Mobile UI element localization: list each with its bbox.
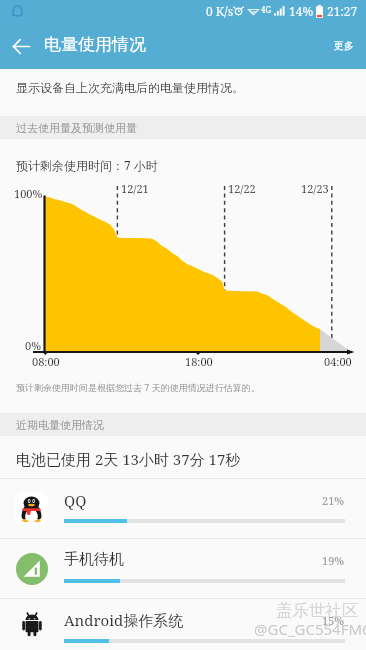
- staticText: @GC_GC554FM6: [254, 619, 366, 639]
- staticText: 04:00: [324, 354, 352, 369]
- staticText: 12/23: [301, 181, 329, 196]
- staticText: QQ: [64, 490, 87, 510]
- staticText: 0%: [25, 338, 42, 353]
- staticText: 12/21: [121, 181, 149, 196]
- staticText: 4G: [261, 4, 272, 15]
- staticText: 19%: [322, 553, 345, 568]
- button[interactable]: 更多: [320, 27, 366, 64]
- staticText: 手机待机: [64, 550, 124, 569]
- staticText: 近期电量使用情况: [16, 418, 104, 432]
- button[interactable]: QQ: [0, 478, 366, 538]
- staticText: 21%: [322, 493, 345, 508]
- staticText: 0 K/s: [206, 3, 234, 19]
- button[interactable]: 手机待机: [0, 538, 366, 598]
- button[interactable]: Back: [0, 25, 42, 67]
- staticText: 12/22: [228, 181, 256, 196]
- staticText: 过去使用量及预测使用量: [16, 121, 137, 135]
- staticText: 电量使用情况: [44, 34, 146, 55]
- staticText: 21:27: [327, 3, 358, 19]
- staticText: 预计剩余使用时间是根据您过去 7 天的使用情况进行估算的。: [16, 381, 260, 393]
- staticText: Android操作系统: [64, 610, 184, 630]
- staticText: 显示设备自上次充满电后的电量使用情况。: [16, 80, 244, 95]
- staticText: 盖乐世社区: [276, 600, 359, 621]
- staticText: 预计剩余使用时间：7 小时: [16, 157, 158, 173]
- staticText: 15%: [322, 613, 345, 628]
- staticText: 更多: [334, 39, 354, 52]
- staticText: 电池已使用 2天 13小时 37分 17秒: [16, 449, 241, 469]
- staticText: 18:00: [185, 354, 213, 369]
- staticText: 100%: [14, 186, 43, 201]
- staticText: 08:00: [32, 354, 60, 369]
- button[interactable]: Android操作系统: [0, 598, 366, 650]
- staticText: 14%: [289, 3, 314, 19]
